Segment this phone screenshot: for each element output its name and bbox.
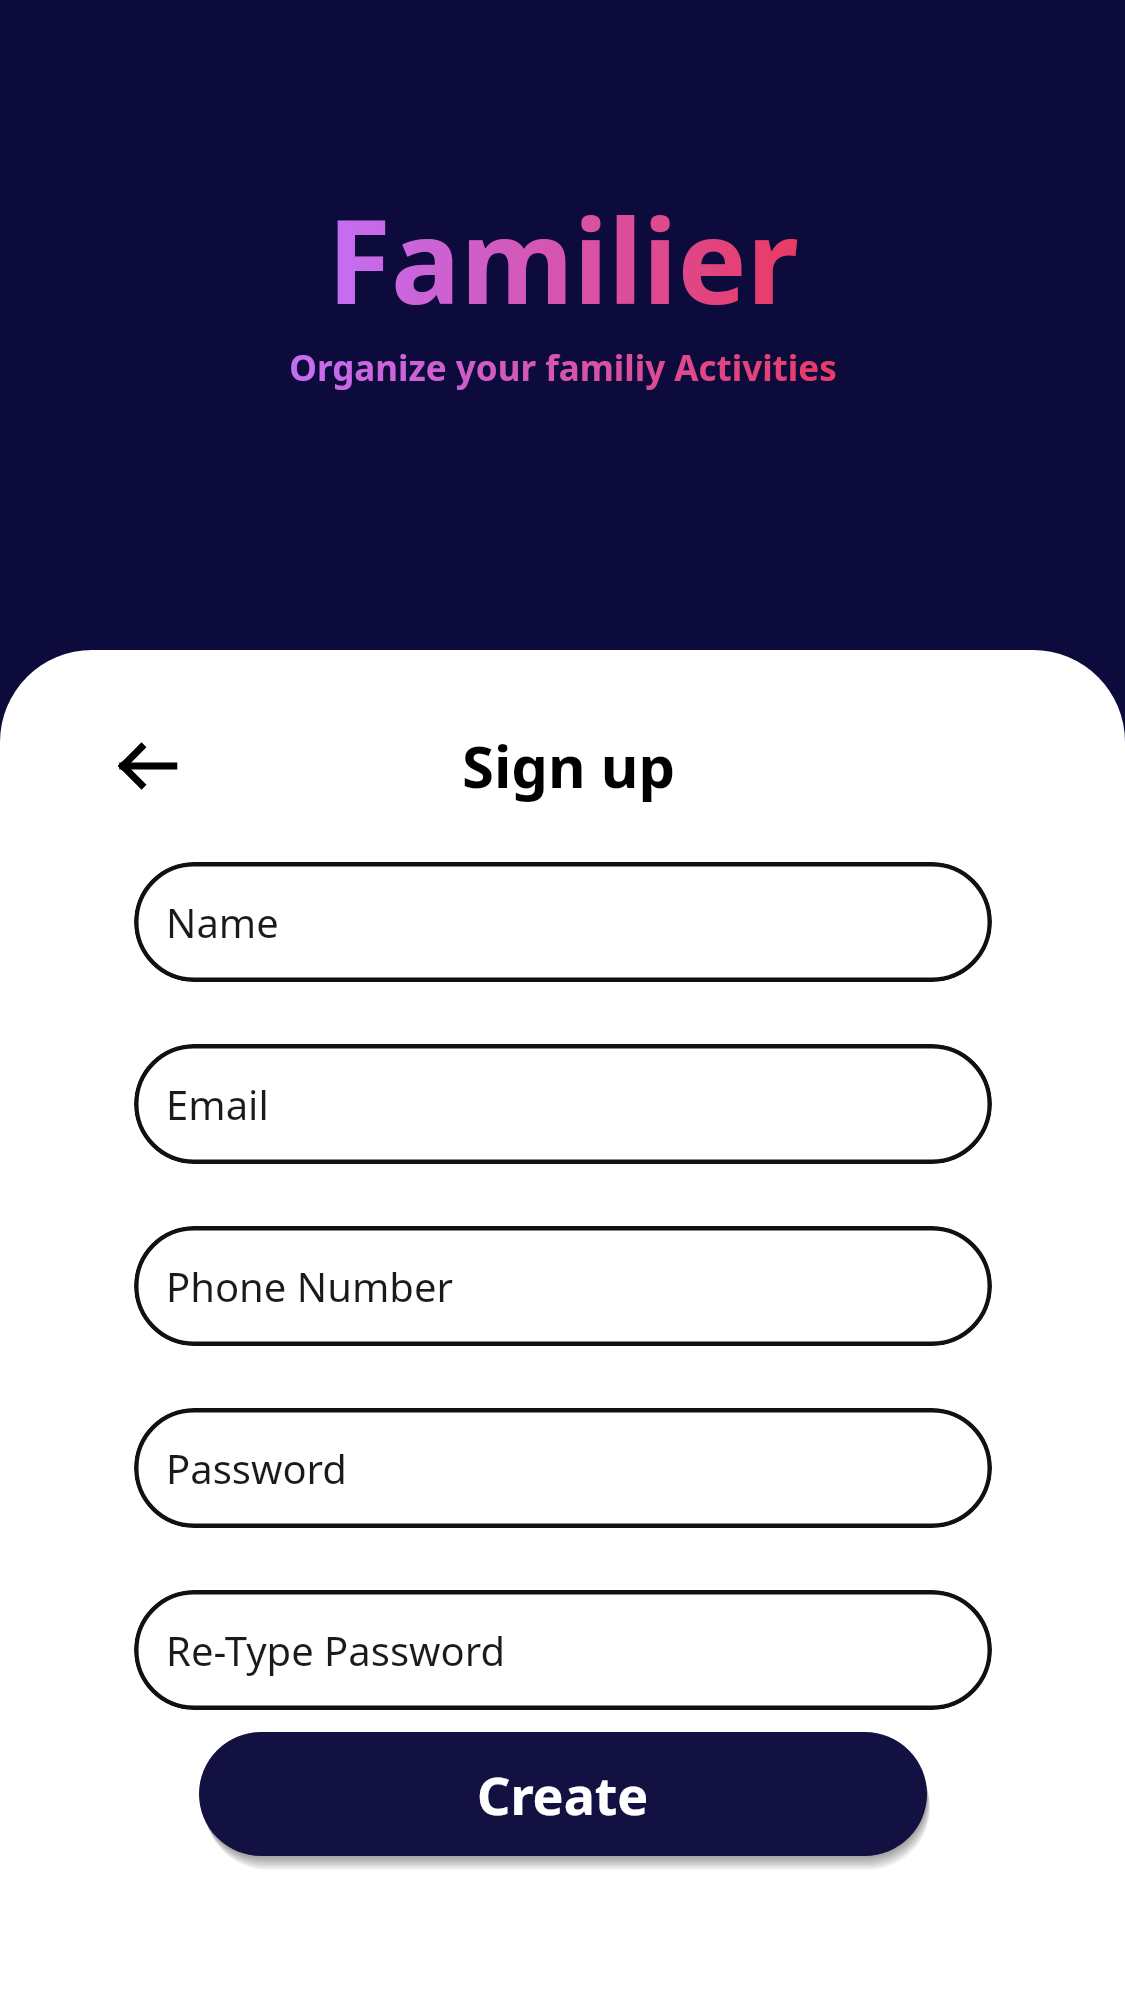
staticText: Create bbox=[477, 1759, 649, 1830]
button[interactable]: Back bbox=[100, 718, 196, 814]
button[interactable]: Name bbox=[134, 862, 992, 982]
staticText: Name bbox=[166, 895, 279, 949]
button[interactable]: Email bbox=[134, 1044, 992, 1164]
staticText: Password bbox=[166, 1441, 347, 1495]
staticText: Re-Type Password bbox=[166, 1623, 506, 1677]
staticText: Organize your familiy Activities bbox=[289, 344, 837, 392]
staticText: Sign up bbox=[462, 726, 676, 805]
button[interactable]: Phone Number bbox=[134, 1226, 992, 1346]
staticText: Phone Number bbox=[166, 1259, 453, 1313]
button[interactable]: Password bbox=[134, 1408, 992, 1528]
staticText: Email bbox=[166, 1077, 269, 1131]
button[interactable]: Re-Type Password bbox=[134, 1590, 992, 1710]
staticText: Familier bbox=[327, 180, 799, 338]
button[interactable]: Create bbox=[199, 1732, 927, 1856]
